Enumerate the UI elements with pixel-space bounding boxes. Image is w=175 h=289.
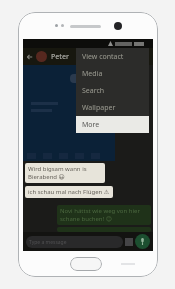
button[interactable]: ich schau mal nach Flügen ⚠ [25, 186, 113, 198]
staticText: Type a message [29, 239, 67, 246]
button[interactable]: Home [70, 257, 102, 271]
staticText: schane buchen! 😊 [60, 215, 112, 223]
button[interactable]: Wallpaper [76, 99, 149, 116]
button[interactable]: Back [23, 48, 153, 65]
button[interactable]: Wird bigsam wann is [25, 163, 105, 183]
button[interactable]: Type a message [26, 236, 123, 248]
staticText: More [82, 120, 100, 130]
staticText: Search [82, 86, 105, 96]
button[interactable]: Novi hättst wie weg von hier mit [57, 205, 151, 225]
staticText: Media [82, 69, 103, 79]
staticText: Peter [51, 52, 69, 62]
staticText: Novi hättst wie weg von hier mit [60, 207, 148, 215]
staticText: Wird bigsam wann is [28, 165, 87, 173]
button[interactable]: Media [76, 65, 149, 82]
button[interactable]: Record voice message [135, 234, 150, 249]
button[interactable]: Back [26, 53, 34, 61]
staticText: View contact [82, 52, 124, 62]
button[interactable]: More [76, 116, 149, 133]
staticText: Wallpaper [82, 103, 116, 113]
button[interactable]: Search [76, 82, 149, 99]
button[interactable]: View contact [76, 48, 149, 65]
button[interactable] [23, 65, 115, 161]
staticText: ich schau mal nach Flügen ⚠ [28, 188, 110, 196]
staticText: Bierabend 😃 [28, 173, 65, 181]
